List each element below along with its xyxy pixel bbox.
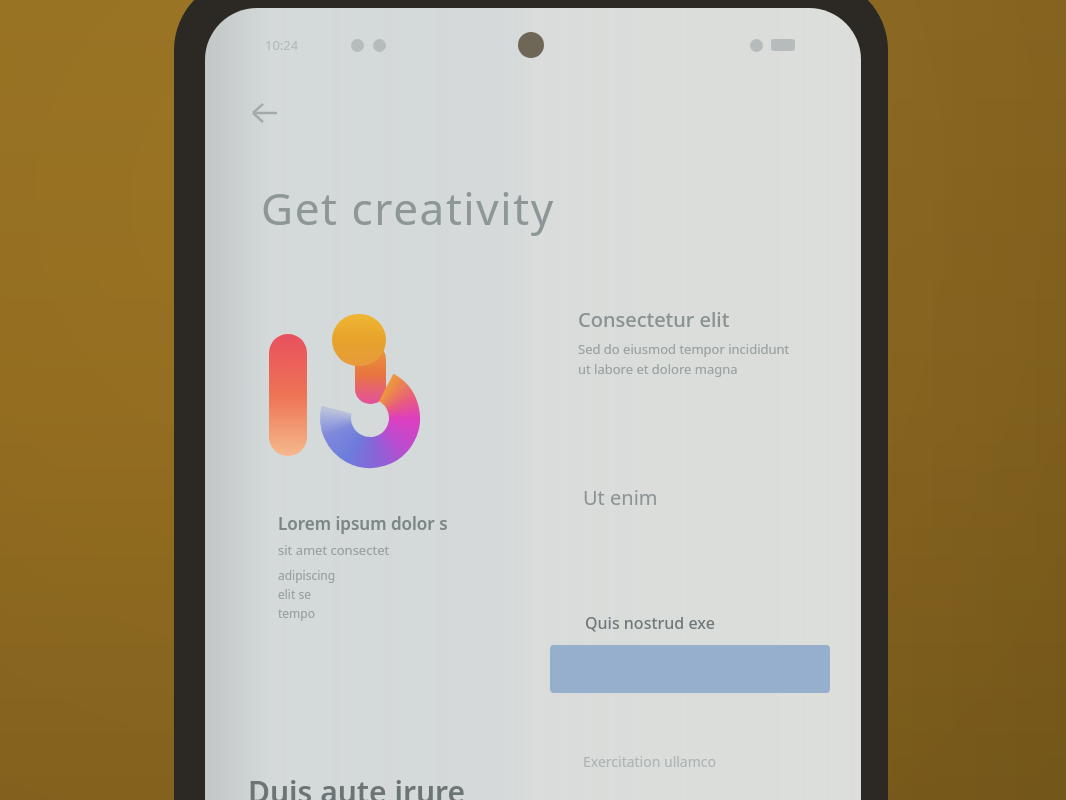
staticText: tempo: [278, 605, 315, 621]
staticText: Ut enim: [583, 484, 658, 511]
staticText: sit amet consectet: [278, 541, 390, 559]
staticText: Exercitation ullamco: [583, 752, 716, 771]
button[interactable]: Back: [242, 90, 288, 136]
staticText: Quis nostrud exe: [585, 612, 715, 634]
staticText: Lorem ipsum dolor s: [278, 512, 448, 535]
staticText: Consectetur elit: [578, 306, 730, 333]
staticText: elit se: [278, 586, 311, 602]
staticText: adipiscing: [278, 567, 336, 583]
staticText: Duis aute irure: [248, 771, 466, 800]
staticText: Sed do eiusmod tempor incididunt ut labo…: [578, 340, 808, 378]
staticText: 10:24: [265, 36, 299, 54]
staticText: Get creativity: [261, 178, 555, 238]
